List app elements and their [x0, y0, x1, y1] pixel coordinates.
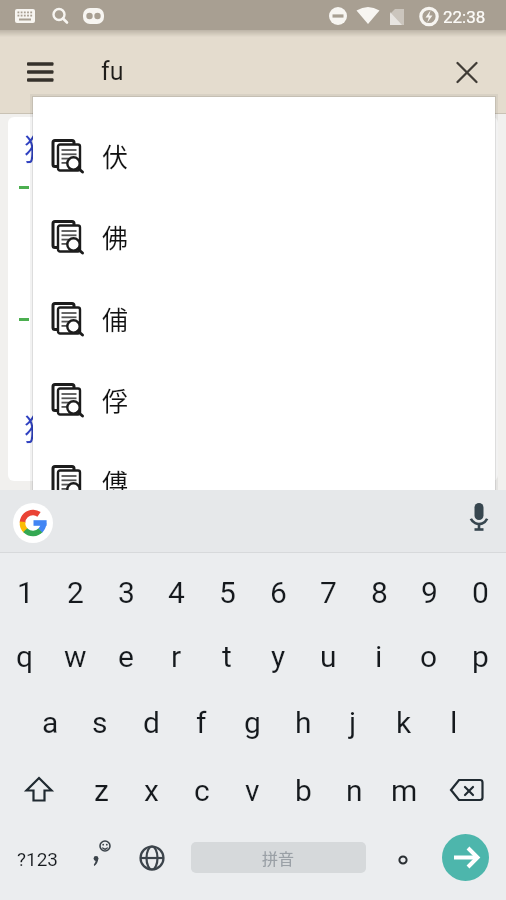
button[interactable]: p [455, 623, 505, 690]
button[interactable] [463, 498, 495, 542]
button[interactable]: v [227, 757, 277, 824]
staticText: 3 [118, 575, 135, 610]
staticText: x [144, 773, 159, 808]
staticText: n [346, 773, 363, 808]
staticText: 独 [24, 125, 64, 168]
button[interactable]: f [176, 689, 226, 756]
button[interactable]: u [303, 623, 353, 690]
button[interactable]: y [253, 623, 303, 690]
button[interactable]: w [50, 623, 100, 690]
button[interactable]: ?123 [0, 831, 76, 887]
button[interactable]: 拼音 [191, 842, 366, 873]
staticText: d [143, 705, 160, 740]
button[interactable]: i [354, 623, 404, 690]
staticText: 佛 [102, 218, 129, 256]
staticText: 5 [219, 575, 236, 610]
staticText: f [196, 705, 207, 740]
staticText: 7 [320, 575, 337, 610]
button[interactable]: m [379, 757, 429, 824]
button[interactable]: l [429, 689, 479, 756]
staticText: h [295, 705, 312, 740]
button[interactable]: n [329, 757, 379, 824]
staticText: 拼音 [262, 846, 295, 869]
staticText: 2 [67, 575, 84, 610]
button[interactable] [18, 775, 60, 809]
staticText: w [64, 639, 87, 674]
button[interactable]: 8 [354, 559, 404, 626]
staticText: 俌 [102, 300, 129, 338]
button[interactable] [442, 834, 489, 881]
staticText: ?123 [17, 848, 59, 870]
staticText: p [472, 639, 489, 674]
button[interactable] [383, 838, 423, 878]
button[interactable]: c [177, 757, 227, 824]
staticText: m [391, 773, 418, 808]
staticText: u [320, 639, 337, 674]
button[interactable]: 俘 [33, 359, 495, 440]
button[interactable]: 4 [151, 559, 201, 626]
button[interactable]: d [126, 689, 176, 756]
staticText: a [42, 705, 59, 740]
staticText: e [118, 639, 134, 674]
staticText: 0 [472, 575, 489, 610]
button[interactable]: r [151, 623, 201, 690]
staticText: q [16, 639, 34, 674]
button[interactable]: h [278, 689, 328, 756]
staticText: l [450, 705, 458, 740]
button[interactable]: 9 [404, 559, 454, 626]
staticText: 22:38 [443, 7, 503, 27]
button[interactable]: 佛 [33, 196, 495, 277]
button[interactable]: 傅 [33, 441, 495, 522]
staticText: 伏 [102, 137, 129, 175]
staticText: 1 [17, 575, 34, 610]
staticText: b [295, 773, 312, 808]
staticText: k [396, 705, 412, 740]
button[interactable]: g [227, 689, 277, 756]
button[interactable] [137, 843, 167, 873]
staticText: i [375, 639, 383, 674]
staticText: 傅 [102, 463, 129, 501]
staticText: 独 [24, 405, 64, 448]
button[interactable]: 1 [0, 559, 50, 626]
staticText: c [194, 773, 210, 808]
button[interactable] [13, 503, 53, 543]
button[interactable] [447, 778, 487, 806]
button[interactable]: 2 [50, 559, 100, 626]
button[interactable]: 俌 [33, 278, 495, 359]
button[interactable]: 7 [303, 559, 353, 626]
button[interactable]: x [126, 757, 176, 824]
staticText: 4 [168, 575, 185, 610]
button[interactable]: k [379, 689, 429, 756]
button[interactable]: q [0, 623, 50, 690]
staticText: z [94, 773, 109, 808]
staticText: g [244, 705, 261, 740]
button[interactable]: b [278, 757, 328, 824]
button[interactable]: 0 [455, 559, 505, 626]
button[interactable]: 6 [253, 559, 303, 626]
button[interactable]: 3 [101, 559, 151, 626]
staticText: t [222, 639, 232, 674]
staticText: j [349, 705, 357, 740]
staticText: s [92, 705, 108, 740]
staticText: fu [101, 57, 181, 86]
button[interactable]: z [76, 757, 126, 824]
button[interactable]: j [328, 689, 378, 756]
button[interactable]: a [25, 689, 75, 756]
staticText: v [245, 773, 260, 808]
button[interactable] [84, 835, 124, 881]
staticText: y [271, 639, 286, 674]
button[interactable]: s [75, 689, 125, 756]
staticText: 6 [270, 575, 287, 610]
staticText: 9 [421, 575, 438, 610]
button[interactable]: 伏 [33, 115, 495, 196]
button[interactable]: 5 [202, 559, 252, 626]
button[interactable]: e [101, 623, 151, 690]
staticText: o [420, 639, 438, 674]
staticText: 8 [371, 575, 388, 610]
staticText: 俘 [102, 381, 129, 419]
staticText: r [171, 639, 182, 674]
button[interactable]: o [404, 623, 454, 690]
button[interactable]: t [202, 623, 252, 690]
